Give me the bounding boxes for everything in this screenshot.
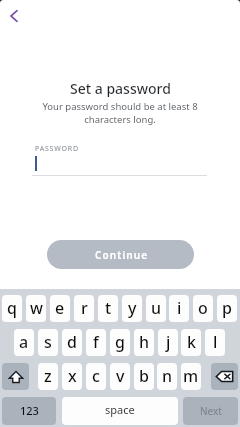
staticText: u xyxy=(151,297,162,319)
button[interactable]: u xyxy=(146,295,166,322)
button[interactable]: i xyxy=(169,295,189,322)
staticText: d xyxy=(67,331,77,353)
staticText: x xyxy=(68,365,77,387)
button[interactable]: Numbers xyxy=(2,397,56,425)
button[interactable]: w xyxy=(26,295,46,322)
button[interactable]: q xyxy=(2,295,22,322)
staticText: g xyxy=(115,331,125,353)
button[interactable]: Back xyxy=(2,4,26,28)
button[interactable]: k xyxy=(181,329,201,356)
button[interactable]: g xyxy=(110,329,130,356)
staticText: n xyxy=(162,365,173,387)
staticText: s xyxy=(44,331,52,353)
staticText: k xyxy=(187,331,196,353)
button[interactable]: s xyxy=(38,329,58,356)
staticText: h xyxy=(139,331,150,353)
staticText: Set a password xyxy=(70,79,171,98)
button[interactable]: r xyxy=(74,295,94,322)
staticText: w xyxy=(30,297,43,319)
staticText: c xyxy=(92,365,100,387)
staticText: b xyxy=(139,365,149,387)
staticText: v xyxy=(116,365,125,387)
button[interactable]: m xyxy=(181,363,201,390)
staticText: y xyxy=(128,297,137,319)
staticText: p xyxy=(222,297,232,319)
button[interactable]: Backspace xyxy=(211,363,238,390)
staticText: r xyxy=(81,297,88,319)
staticText: j xyxy=(166,331,171,353)
button[interactable]: j xyxy=(158,329,178,356)
staticText: Next xyxy=(200,404,222,418)
button[interactable]: a xyxy=(14,329,34,356)
staticText: m xyxy=(183,365,199,387)
button[interactable]: Shift xyxy=(2,363,29,390)
staticText: f xyxy=(93,331,99,353)
button[interactable]: p xyxy=(217,295,237,322)
button[interactable]: h xyxy=(134,329,154,356)
staticText: l xyxy=(213,331,218,353)
staticText: i xyxy=(177,297,182,319)
staticText: o xyxy=(198,297,208,319)
staticText: Continue xyxy=(95,248,149,262)
button[interactable]: x xyxy=(62,363,82,390)
button[interactable]: e xyxy=(50,295,70,322)
staticText: 123 xyxy=(20,403,39,418)
staticText: space xyxy=(105,402,135,417)
button[interactable]: space xyxy=(62,397,178,425)
button[interactable]: Continue xyxy=(47,240,194,269)
button[interactable]: Next xyxy=(183,397,238,425)
button[interactable]: b xyxy=(134,363,154,390)
button[interactable]: c xyxy=(86,363,106,390)
staticText: Your password should be at least 8 chara… xyxy=(33,100,207,126)
staticText: PASSWORD xyxy=(35,144,79,154)
button[interactable]: t xyxy=(98,295,118,322)
staticText: a xyxy=(19,331,29,353)
button[interactable]: y xyxy=(122,295,142,322)
button[interactable]: z xyxy=(38,363,58,390)
staticText: e xyxy=(55,297,65,319)
staticText: z xyxy=(44,365,52,387)
staticText: q xyxy=(7,297,17,319)
button[interactable]: f xyxy=(86,329,106,356)
button[interactable]: l xyxy=(205,329,225,356)
button[interactable]: n xyxy=(157,363,177,390)
button[interactable]: o xyxy=(193,295,213,322)
staticText: t xyxy=(105,297,112,319)
button[interactable]: v xyxy=(110,363,130,390)
button[interactable]: d xyxy=(62,329,82,356)
